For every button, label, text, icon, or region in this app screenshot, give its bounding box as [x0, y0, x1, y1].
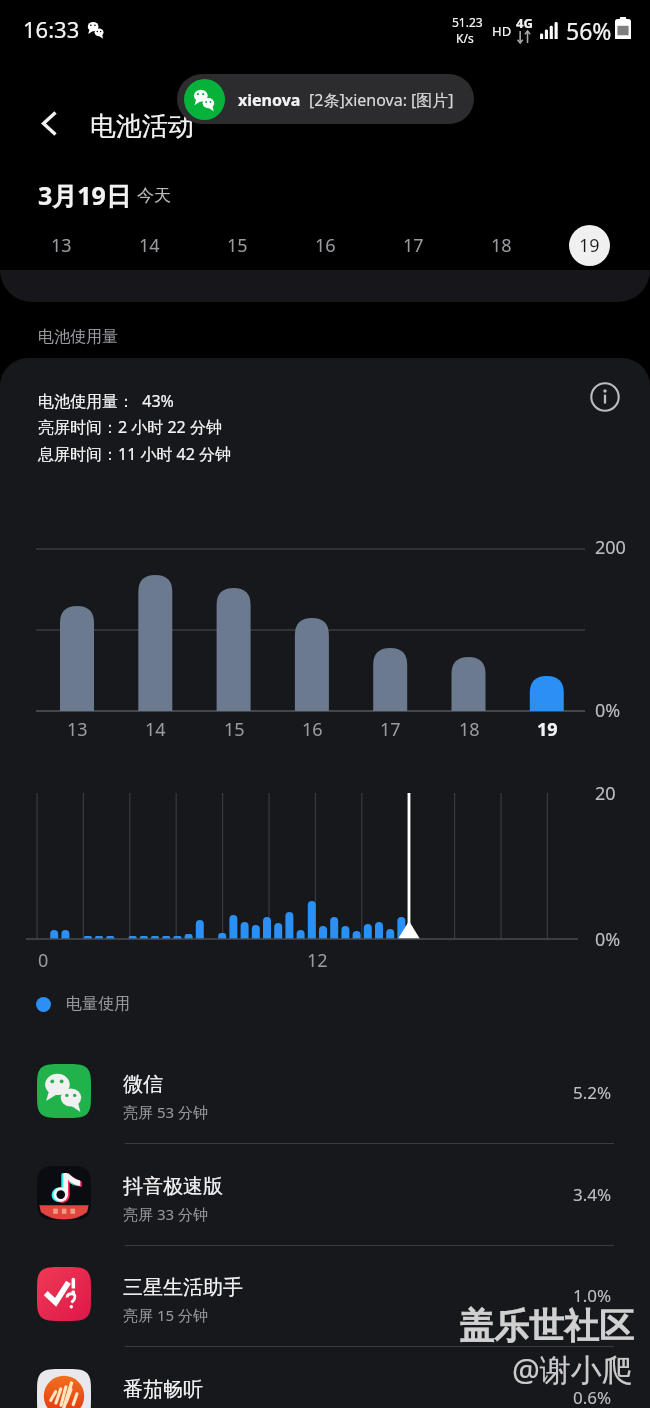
staticText: 亮屏 53 分钟 — [123, 1102, 208, 1122]
staticText: 4G — [516, 14, 533, 32]
staticText: xienova — [238, 89, 301, 111]
staticText: @谢小爬 — [512, 1348, 633, 1390]
staticText: 20 — [595, 781, 616, 806]
staticText: 200 — [595, 535, 626, 560]
staticText: 0.6% — [573, 1386, 612, 1408]
button[interactable]: 19 — [545, 224, 633, 266]
staticText: 番茄畅听 — [123, 1377, 203, 1402]
button[interactable]: xienova — [177, 74, 474, 124]
staticText: 电池使用量 — [38, 327, 118, 347]
button[interactable]: 15 — [193, 224, 281, 266]
staticText: 三星生活助手 — [123, 1275, 243, 1300]
staticText: 17 — [380, 717, 401, 742]
button[interactable]: 18 — [457, 224, 545, 266]
staticText: 亮屏时间：2 小时 22 分钟 — [38, 416, 222, 438]
staticText: 今天 — [137, 185, 171, 206]
staticText: 3月19日 — [38, 178, 131, 212]
staticText: 14 — [145, 717, 166, 742]
staticText: 息屏时间：11 小时 42 分钟 — [38, 443, 232, 465]
staticText: 15 — [224, 717, 245, 742]
button[interactable]: 三星生活助手 — [0, 1246, 650, 1348]
button[interactable]: Back — [26, 100, 72, 146]
button[interactable]: 17 — [369, 224, 457, 266]
staticText: 14 — [139, 233, 160, 258]
staticText: 抖音极速版 — [123, 1174, 223, 1199]
staticText: [2条]xienova: [图片] — [309, 89, 454, 111]
staticText: 18 — [491, 233, 512, 258]
staticText: HD — [492, 22, 512, 40]
staticText: 微信 — [123, 1072, 163, 1097]
staticText: 0% — [595, 927, 621, 952]
button[interactable]: 13 — [17, 224, 105, 266]
staticText: 16:33 — [23, 14, 80, 44]
button[interactable]: Info — [584, 376, 626, 418]
staticText: 51.23 — [452, 14, 483, 30]
staticText: 19 — [537, 717, 558, 742]
button[interactable]: 微信 — [0, 1043, 650, 1145]
staticText: 15 — [227, 233, 248, 258]
staticText: 17 — [403, 233, 424, 258]
staticText: 19 — [579, 233, 600, 258]
staticText: 亮屏 33 分钟 — [123, 1204, 208, 1224]
staticText: 13 — [51, 233, 72, 258]
button[interactable]: 14 — [105, 224, 193, 266]
button[interactable]: 番茄畅听 — [0, 1348, 650, 1408]
staticText: K/s — [456, 30, 474, 46]
staticText: 0 — [38, 948, 49, 973]
staticText: 13 — [67, 717, 88, 742]
button[interactable]: 16 — [281, 224, 369, 266]
staticText: 3.4% — [573, 1183, 612, 1206]
staticText: 1.0% — [573, 1284, 612, 1307]
staticText: 电量使用 — [66, 994, 130, 1014]
staticText: 电池使用量： 43% — [38, 390, 174, 412]
staticText: 18 — [459, 717, 480, 742]
staticText: 16 — [315, 233, 336, 258]
staticText: 5.2% — [573, 1081, 612, 1104]
staticText: 0% — [595, 698, 621, 723]
staticText: 16 — [302, 717, 323, 742]
staticText: 盖乐世社区 — [459, 1304, 634, 1348]
staticText: 12 — [307, 948, 328, 973]
staticText: 56% — [566, 15, 612, 46]
staticText: 亮屏 15 分钟 — [123, 1305, 208, 1325]
staticText: 电池活动 — [90, 110, 194, 143]
button[interactable]: 抖音极速版 — [0, 1145, 650, 1247]
